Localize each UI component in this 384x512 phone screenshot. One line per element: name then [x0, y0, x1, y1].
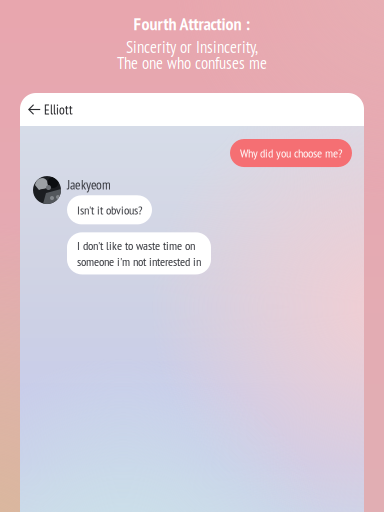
- button[interactable]: Back to Elliott: [20, 92, 81, 127]
- staticText: Isn't it obvious?: [77, 202, 142, 218]
- staticText: Fourth Attraction :: [133, 12, 250, 35]
- staticText: Elliott: [44, 101, 73, 118]
- staticText: The one who confuses me: [117, 52, 267, 74]
- staticText: Why did you choose me?: [240, 145, 342, 161]
- staticText: someone i'm not interested in: [77, 253, 201, 269]
- staticText: Jaekyeom: [67, 176, 111, 193]
- staticText: Sincerity or Insincerity,: [126, 36, 258, 58]
- staticText: I don't like to waste time on: [77, 237, 195, 253]
